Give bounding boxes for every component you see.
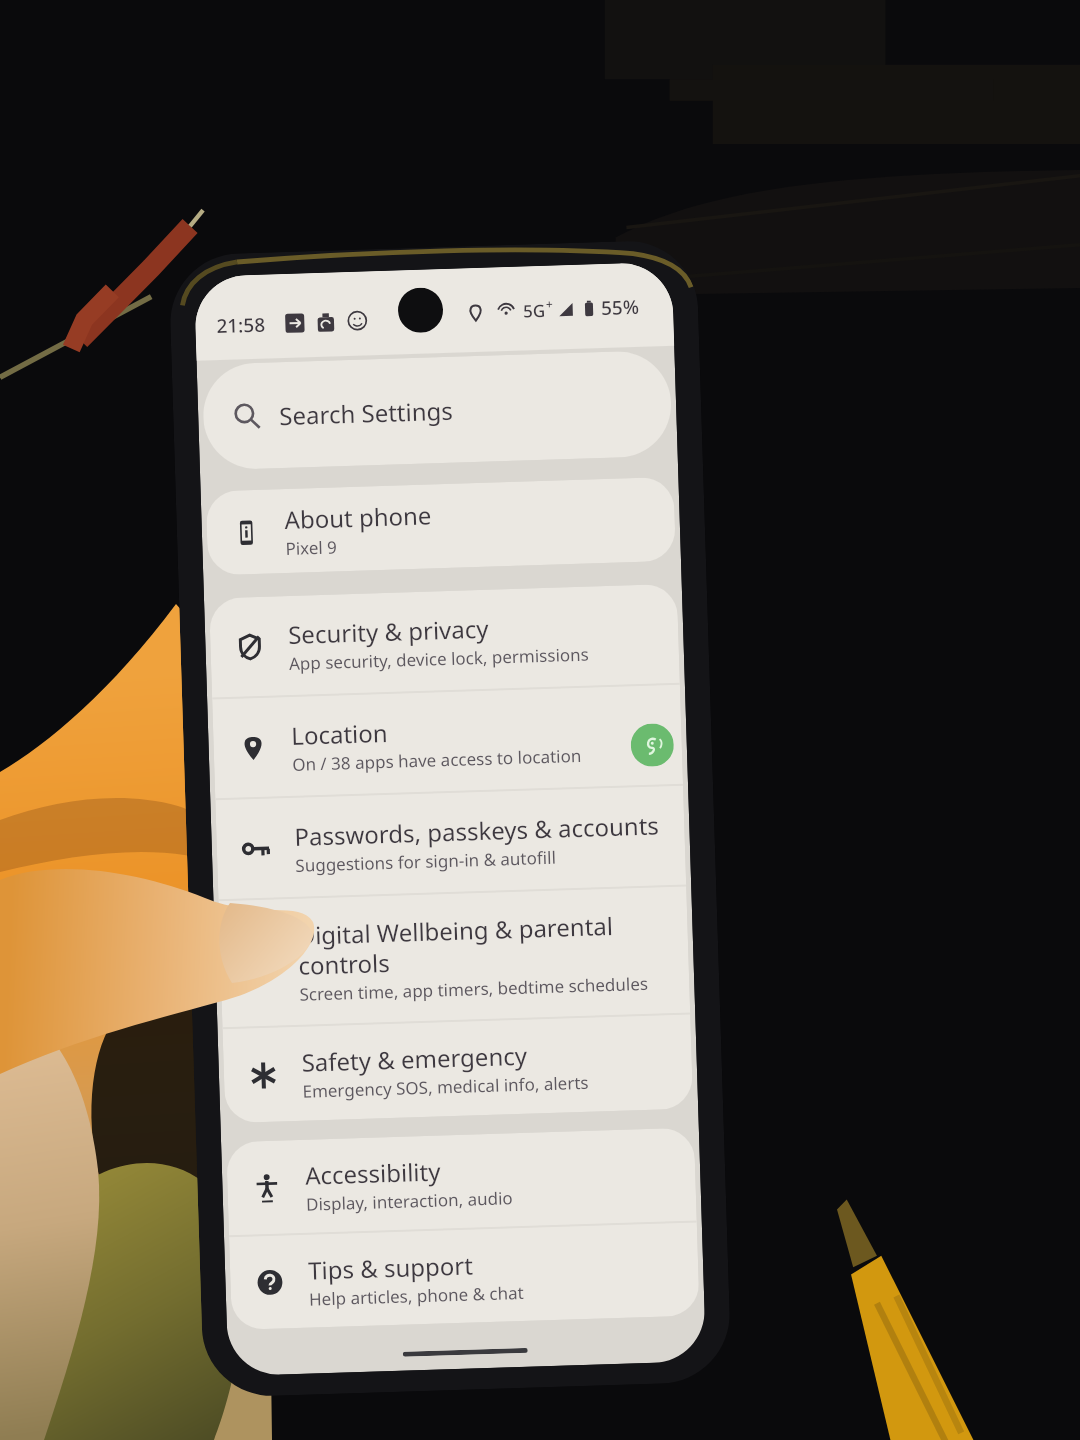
button[interactable]: Digital Wellbeing & parental controls [218, 887, 690, 1027]
staticText: Pixel 9 [285, 535, 338, 560]
staticText: 55% [601, 294, 639, 321]
staticText: Accessibility [305, 1154, 442, 1192]
staticText: Passwords, passkeys & accounts [294, 808, 660, 853]
staticText: Tips & support [308, 1248, 474, 1287]
staticText: + [546, 295, 553, 312]
other: Location, Wi-Fi, 5G, signal and battery … [467, 294, 639, 325]
button[interactable]: Location [212, 685, 683, 798]
staticText: Screen time, app timers, bedtime schedul… [299, 972, 649, 1006]
staticText: 5G [523, 299, 546, 322]
staticText: 21:58 [216, 312, 266, 339]
button[interactable]: Accessibility shortcut [630, 723, 674, 767]
staticText: App security, device lock, permissions [289, 643, 589, 675]
staticText: Search Settings [279, 394, 454, 432]
button[interactable]: Security & privacy [209, 584, 680, 697]
button[interactable]: Passwords, passkeys & accounts [215, 786, 686, 899]
other: Notifications [285, 310, 368, 333]
button[interactable]: Accessibility [226, 1127, 697, 1235]
staticText: On / 38 apps have access to location [292, 744, 582, 776]
staticText: Safety & emergency [301, 1039, 528, 1079]
staticText: About phone [284, 498, 432, 536]
staticText: Display, interaction, audio [306, 1186, 513, 1216]
button[interactable]: Search Settings [202, 350, 673, 470]
staticText: Help articles, phone & chat [309, 1281, 524, 1311]
staticText: Emergency SOS, medical info, alerts [302, 1071, 590, 1103]
staticText: Digital Wellbeing & parental controls [297, 907, 683, 982]
button[interactable]: Safety & emergency [222, 1014, 693, 1123]
staticText: Security & privacy [288, 612, 489, 651]
staticText: Location [291, 716, 389, 752]
staticText: Suggestions for sign-in & autofill [295, 846, 557, 877]
button[interactable]: About phone [206, 477, 676, 575]
button[interactable]: Tips & support [229, 1222, 700, 1330]
